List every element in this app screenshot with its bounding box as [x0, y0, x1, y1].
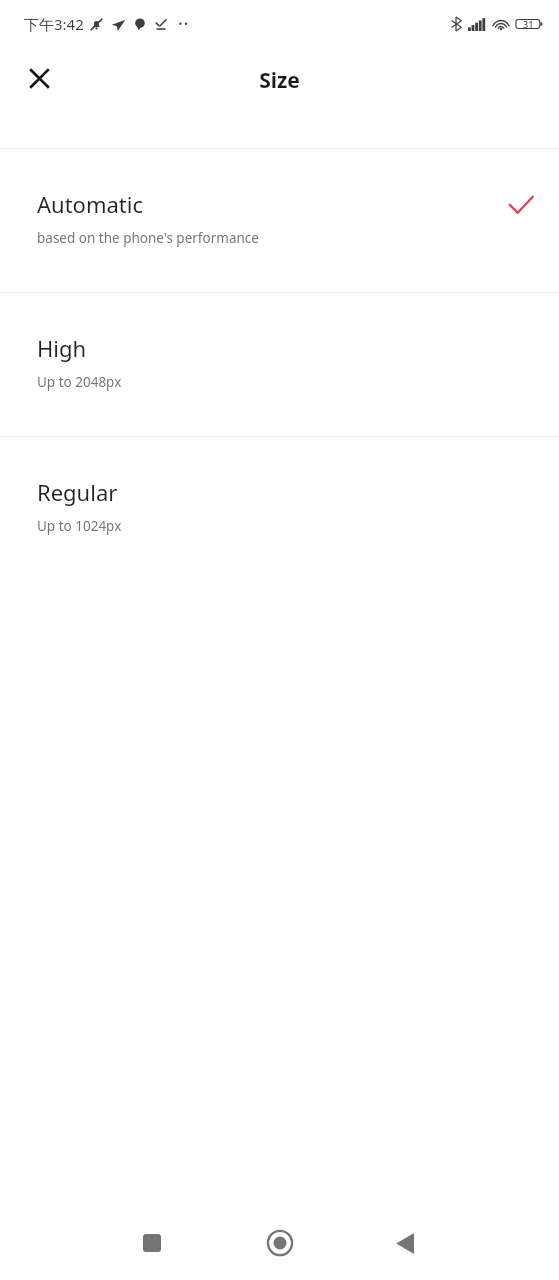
button[interactable]: Close	[15, 54, 63, 102]
button[interactable]: Recent apps	[128, 1219, 176, 1267]
button[interactable]: Back	[381, 1219, 429, 1267]
staticText: Size	[259, 66, 300, 95]
staticText: 下午3:42	[24, 14, 84, 34]
button[interactable]: Regular	[0, 437, 559, 580]
staticText: Up to 1024px	[37, 517, 122, 535]
staticText: Regular	[37, 477, 118, 507]
button[interactable]: Automatic	[0, 149, 559, 292]
staticText: 31	[523, 18, 534, 30]
staticText: High	[37, 333, 87, 363]
button[interactable]: High	[0, 293, 559, 436]
staticText: based on the phone's performance	[37, 229, 259, 247]
staticText: Up to 2048px	[37, 373, 122, 391]
staticText: Automatic	[37, 189, 143, 219]
button[interactable]: Home	[256, 1219, 304, 1267]
